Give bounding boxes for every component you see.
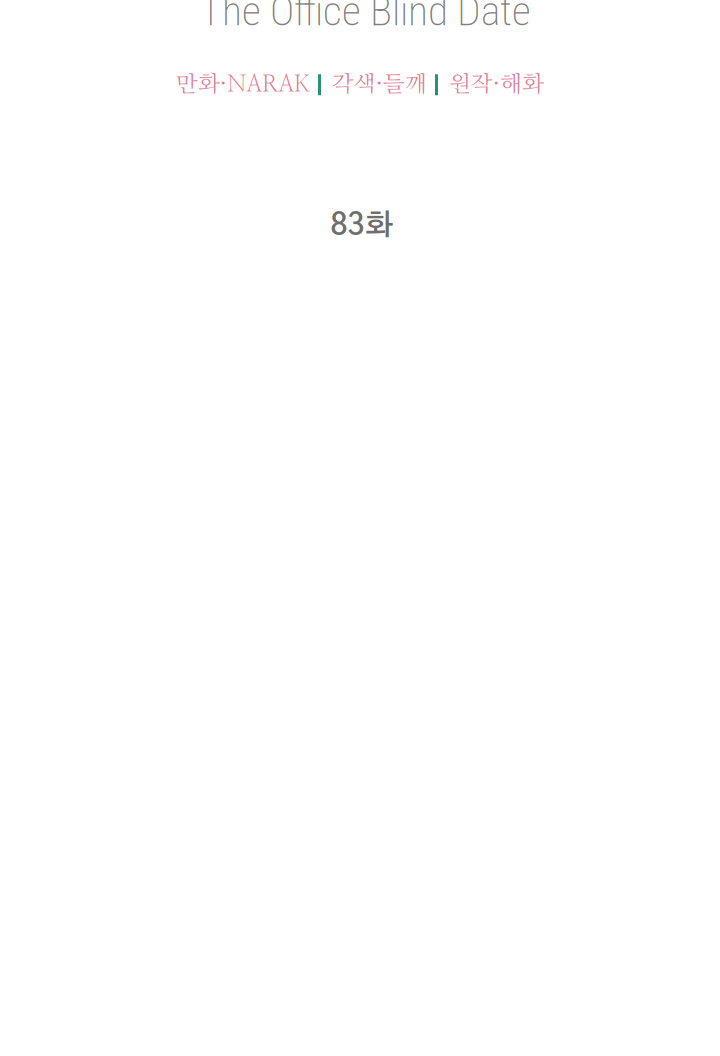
staticText: 각색·들깨 xyxy=(332,73,427,96)
staticText: The Office Blind Date xyxy=(200,0,531,35)
staticText: 원작·해화 xyxy=(449,73,544,96)
staticText: 83화 xyxy=(330,211,393,240)
staticText: 만화·NARAK xyxy=(176,73,310,96)
